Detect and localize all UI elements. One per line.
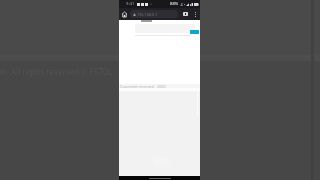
- button[interactable]: [135, 24, 195, 33]
- button[interactable]: Tabs: [180, 8, 190, 20]
- button[interactable]: 192.168.0.1: [130, 10, 178, 18]
- button[interactable]: More options: [190, 8, 200, 20]
- staticText: 88%: [170, 1, 179, 7]
- staticText: Copyright reserved 2020: [120, 84, 166, 89]
- button[interactable]: Home: [119, 8, 130, 20]
- staticText: 9:41: [126, 1, 135, 7]
- staticText: 192.168.0.1: [137, 12, 158, 17]
